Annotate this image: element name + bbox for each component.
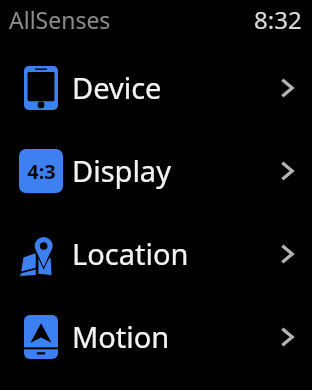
staticText: Motion <box>72 317 170 356</box>
button[interactable]: Device <box>0 46 312 129</box>
button[interactable]: Location <box>0 212 312 295</box>
staticText: Display <box>72 151 171 190</box>
staticText: 4:3 <box>27 158 56 185</box>
button[interactable]: Motion <box>0 295 312 378</box>
staticText: AllSenses <box>9 4 111 35</box>
staticText: Device <box>72 68 162 107</box>
staticText: 8:32 <box>254 3 302 36</box>
staticText: Location <box>72 234 189 273</box>
button[interactable]: 4:3 <box>0 129 312 212</box>
